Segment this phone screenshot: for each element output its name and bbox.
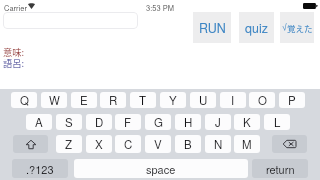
- staticText: X: [95, 136, 103, 152]
- staticText: C: [124, 136, 133, 152]
- button[interactable]: space: [74, 159, 248, 178]
- staticText: N: [214, 136, 223, 152]
- button[interactable]: Q: [11, 92, 37, 108]
- button[interactable]: [3, 12, 138, 29]
- staticText: A: [35, 114, 43, 130]
- staticText: P: [288, 92, 296, 108]
- button[interactable]: T: [130, 92, 156, 108]
- button[interactable]: U: [190, 92, 216, 108]
- button[interactable]: RUN: [193, 12, 231, 43]
- button[interactable]: E: [71, 92, 97, 108]
- button[interactable]: N: [205, 135, 231, 153]
- button[interactable]: L: [264, 114, 290, 130]
- button[interactable]: Z: [56, 135, 82, 153]
- button[interactable]: G: [145, 114, 171, 130]
- staticText: M: [242, 136, 252, 152]
- button[interactable]: √: [280, 12, 314, 43]
- staticText: H: [184, 114, 193, 130]
- staticText: L: [274, 114, 281, 130]
- button[interactable]: M: [234, 135, 260, 153]
- staticText: K: [243, 114, 251, 130]
- button[interactable]: S: [56, 114, 82, 130]
- staticText: G: [154, 114, 163, 130]
- button[interactable]: return: [252, 159, 308, 178]
- staticText: √: [282, 21, 287, 34]
- staticText: .?123: [26, 161, 54, 177]
- button[interactable]: W: [41, 92, 67, 108]
- staticText: return: [266, 161, 295, 177]
- staticText: Carrier: [4, 2, 27, 13]
- staticText: I: [231, 92, 235, 108]
- button[interactable]: D: [86, 114, 112, 130]
- button[interactable]: Backspace: [272, 135, 307, 153]
- button[interactable]: B: [175, 135, 201, 153]
- staticText: J: [215, 114, 221, 130]
- staticText: E: [80, 92, 88, 108]
- staticText: 語呂:: [3, 56, 25, 69]
- button[interactable]: H: [175, 114, 201, 130]
- staticText: Q: [20, 92, 29, 108]
- button[interactable]: I: [220, 92, 246, 108]
- button[interactable]: V: [145, 135, 171, 153]
- button[interactable]: X: [86, 135, 112, 153]
- staticText: Z: [65, 136, 73, 152]
- staticText: 3:53 PM: [146, 2, 174, 13]
- staticText: V: [154, 136, 162, 152]
- button[interactable]: J: [205, 114, 231, 130]
- button[interactable]: P: [279, 92, 305, 108]
- button[interactable]: F: [115, 114, 141, 130]
- staticText: RUN: [199, 19, 226, 37]
- button[interactable]: quiz: [239, 12, 274, 43]
- staticText: B: [184, 136, 192, 152]
- staticText: S: [65, 114, 73, 130]
- staticText: U: [199, 92, 208, 108]
- button[interactable]: Y: [160, 92, 186, 108]
- staticText: quiz: [245, 19, 268, 37]
- button[interactable]: C: [115, 135, 141, 153]
- staticText: F: [124, 114, 132, 130]
- staticText: Y: [169, 92, 177, 108]
- button[interactable]: .?123: [12, 159, 68, 178]
- button[interactable]: Shift: [13, 135, 48, 153]
- staticText: 意味:: [3, 45, 25, 58]
- staticText: 覚えた: [287, 22, 313, 34]
- staticText: space: [146, 161, 176, 177]
- button[interactable]: A: [26, 114, 52, 130]
- button[interactable]: R: [100, 92, 126, 108]
- button[interactable]: K: [234, 114, 260, 130]
- staticText: R: [109, 92, 118, 108]
- staticText: O: [258, 92, 267, 108]
- staticText: W: [49, 92, 60, 108]
- staticText: D: [95, 114, 104, 130]
- button[interactable]: O: [249, 92, 275, 108]
- staticText: T: [139, 92, 147, 108]
